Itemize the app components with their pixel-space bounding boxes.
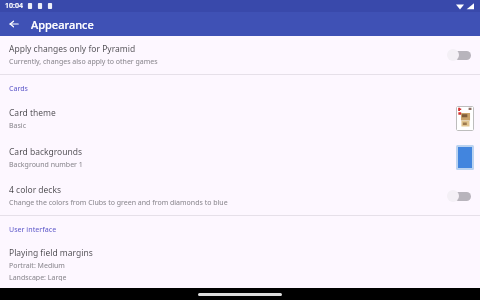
button[interactable]: Card background preview [456, 145, 474, 170]
button[interactable]: Playing field margins [0, 240, 480, 288]
staticText: Apply changes only for Pyramid [9, 43, 136, 55]
button[interactable]: Back [5, 15, 23, 33]
button[interactable]: Apply changes only for Pyramid [0, 36, 480, 74]
button[interactable]: Card theme preview [456, 106, 474, 131]
button[interactable]: Card backgrounds [0, 138, 480, 177]
button[interactable]: 4 color decks [0, 177, 480, 215]
button[interactable]: Toggle [446, 189, 472, 203]
button[interactable]: Home [198, 293, 282, 296]
staticText: User interface [9, 225, 57, 235]
staticText: Card backgrounds [9, 146, 83, 158]
staticText: Basic [9, 121, 26, 131]
staticText: Landscape: Large [9, 273, 67, 281]
staticText: Background number 1 [9, 160, 83, 170]
staticText: Portrait: Medium [9, 261, 65, 271]
button[interactable]: Toggle [446, 48, 472, 62]
staticText: Card theme [9, 107, 56, 119]
staticText: Currently, changes also apply to other g… [9, 57, 158, 67]
button[interactable]: Card theme [0, 99, 480, 138]
staticText: Playing field margins [9, 247, 93, 259]
staticText: Change the colors from Clubs to green an… [9, 198, 228, 208]
staticText: 10:04 [5, 1, 23, 11]
staticText: Appearance [31, 17, 94, 32]
staticText: Cards [9, 84, 29, 94]
staticText: 4 color decks [9, 184, 62, 196]
